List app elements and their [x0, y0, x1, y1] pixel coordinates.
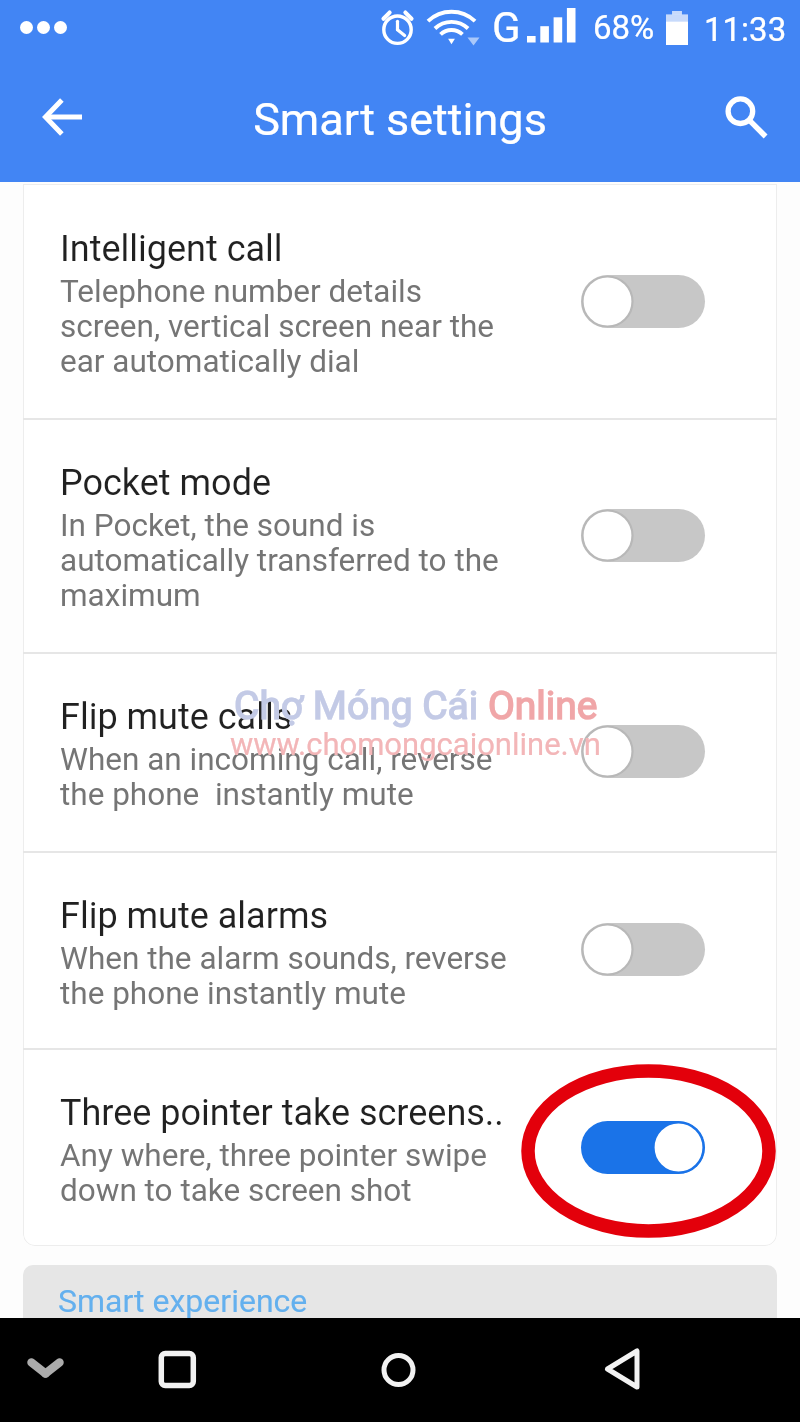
staticText: Online: [488, 683, 598, 729]
staticText: ear automatically dial: [60, 343, 360, 380]
staticText: automatically transferred to the: [60, 542, 499, 579]
staticText: Any where, three pointer swipe: [60, 1137, 487, 1174]
button[interactable]: Flip mute calls: [23, 652, 777, 851]
staticText: Flip mute alarms: [60, 895, 329, 937]
staticText: Smart experience: [58, 1282, 308, 1320]
button[interactable]: Three pointer take screens..: [23, 1048, 777, 1246]
staticText: Flip mute calls: [60, 696, 293, 738]
staticText: When the alarm sounds, reverse: [60, 940, 507, 977]
button[interactable]: Home: [352, 1318, 444, 1422]
button[interactable]: Back: [575, 1318, 667, 1422]
staticText: Smart settings: [253, 93, 547, 146]
button[interactable]: Pocket mode: [23, 418, 777, 652]
staticText: down to take screen shot: [60, 1172, 412, 1209]
staticText: 68%: [593, 8, 655, 47]
button[interactable]: Flip mute alarms: [23, 851, 777, 1048]
staticText: screen, vertical screen near the: [60, 308, 495, 345]
staticText: When an incoming call, reverse: [60, 741, 493, 778]
button[interactable]: Recents: [130, 1318, 222, 1422]
button[interactable]: Search: [706, 78, 782, 154]
staticText: Intelligent call: [60, 228, 283, 270]
staticText: Pocket mode: [60, 462, 272, 504]
button[interactable]: Hide keyboard: [0, 1318, 92, 1422]
staticText: 11:33: [704, 10, 787, 49]
staticText: maximum: [60, 577, 201, 614]
staticText: Chợ Móng Cái: [234, 683, 488, 729]
button[interactable]: Disabled: [581, 725, 705, 778]
staticText: G: [492, 3, 521, 52]
staticText: Telephone number details: [60, 273, 423, 310]
button[interactable]: Back: [28, 82, 98, 152]
staticText: www.chomongcaionline.vn: [230, 726, 601, 762]
button[interactable]: Disabled: [581, 509, 705, 562]
button[interactable]: Smart experience: [23, 1265, 777, 1325]
button[interactable]: Intelligent call: [23, 184, 777, 418]
staticText: the phone instantly mute: [60, 776, 414, 813]
button[interactable]: Disabled: [581, 275, 705, 328]
staticText: Three pointer take screens..: [60, 1092, 504, 1134]
staticText: In Pocket, the sound is: [60, 507, 376, 544]
button[interactable]: Disabled: [581, 923, 705, 976]
button[interactable]: Enabled: [581, 1121, 705, 1174]
staticText: the phone instantly mute: [60, 975, 406, 1012]
